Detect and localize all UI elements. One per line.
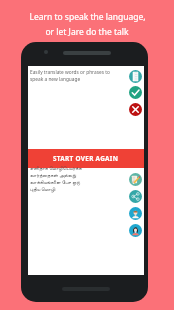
button[interactable]: Contact (129, 224, 142, 237)
button[interactable]: Reject (129, 103, 142, 116)
button[interactable]: Profile (129, 207, 142, 220)
button[interactable]: Edit (129, 173, 142, 186)
button[interactable]: Accept (129, 86, 142, 99)
button[interactable]: Notes (129, 70, 142, 83)
staticText: Easily translate words or phrases to spe… (30, 69, 118, 83)
staticText: or let Jare do the talk (45, 26, 129, 38)
button[interactable]: Share (129, 190, 142, 203)
staticText: எளிதாக மொழிபெயர்க்க வார்த்தைகள் அல்லது வ… (30, 165, 91, 193)
button[interactable]: START OVER AGAIN (28, 149, 144, 168)
staticText: START OVER AGAIN (53, 154, 119, 163)
staticText: Learn to speak the language, (29, 11, 146, 23)
